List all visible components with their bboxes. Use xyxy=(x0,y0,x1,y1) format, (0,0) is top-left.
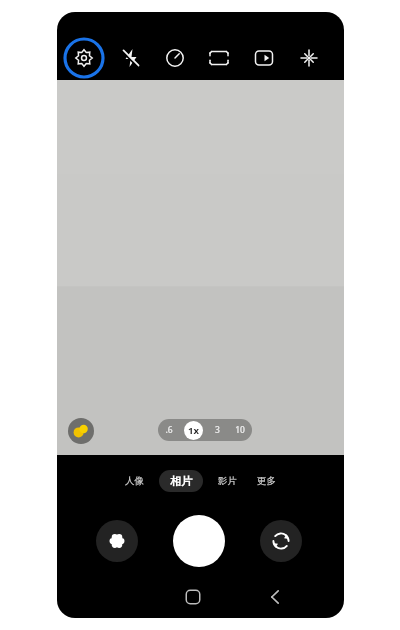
button[interactable]: 更多 xyxy=(252,471,281,491)
staticText: 更多 xyxy=(257,475,276,487)
staticText: 影片 xyxy=(218,475,237,487)
button[interactable]: Motion photo xyxy=(247,41,281,75)
button[interactable]: .6 xyxy=(158,419,180,441)
staticText: 相片 xyxy=(170,474,192,488)
button[interactable]: Shutter xyxy=(173,515,225,567)
button[interactable]: Bokeh filter xyxy=(68,418,94,444)
button[interactable]: Gallery xyxy=(96,520,138,562)
button[interactable]: 3 xyxy=(206,419,228,441)
button[interactable]: Aspect ratio 3 to 4 xyxy=(202,41,236,75)
button[interactable]: Timer xyxy=(158,41,192,75)
staticText: 10 xyxy=(235,424,245,436)
button[interactable]: Home xyxy=(179,583,207,611)
button[interactable]: Flash off xyxy=(114,41,148,75)
button[interactable]: Back xyxy=(261,583,289,611)
button[interactable]: Effects xyxy=(292,41,326,75)
button[interactable]: 人像 xyxy=(120,471,149,491)
button[interactable]: 影片 xyxy=(213,471,242,491)
staticText: .6 xyxy=(165,424,173,436)
button[interactable]: 1x xyxy=(180,419,206,441)
staticText: 人像 xyxy=(125,475,144,487)
button[interactable]: Switch camera xyxy=(260,520,302,562)
staticText: 3 xyxy=(215,424,220,436)
button[interactable]: 10 xyxy=(228,419,252,441)
staticText: 1x xyxy=(188,424,199,437)
button[interactable]: Settings xyxy=(63,37,105,79)
button[interactable]: 相片 xyxy=(159,470,203,492)
